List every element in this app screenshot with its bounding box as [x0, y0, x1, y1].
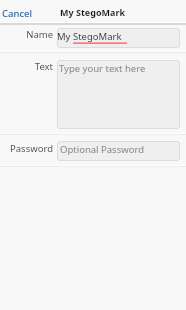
staticText: Password — [0, 142, 53, 155]
staticText: Name — [0, 28, 53, 41]
staticText: Text — [0, 60, 53, 73]
button[interactable]: My StegoMark — [57, 28, 180, 48]
staticText: My StegoMark — [57, 30, 122, 43]
staticText: My StegoMark — [60, 6, 125, 18]
button[interactable]: Type your text here — [57, 60, 180, 129]
staticText: Optional Password — [60, 143, 144, 156]
button[interactable]: Optional Password — [57, 141, 180, 161]
staticText: Type your text here — [59, 62, 146, 75]
staticText: Cancel — [2, 7, 33, 20]
button[interactable]: Cancel — [0, 2, 39, 21]
